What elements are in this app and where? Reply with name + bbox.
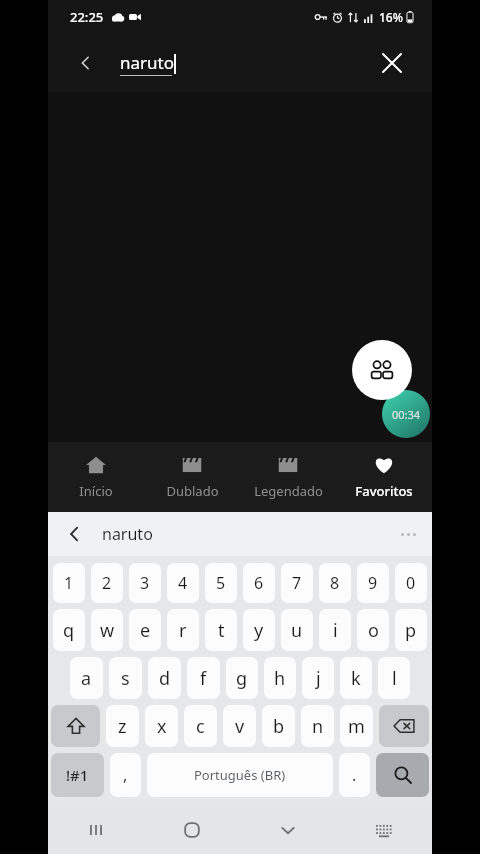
button[interactable]: 7 bbox=[281, 563, 313, 603]
button[interactable]: Change keyboard bbox=[336, 806, 432, 854]
button[interactable]: naruto bbox=[102, 512, 384, 556]
button[interactable]: Início bbox=[48, 442, 144, 512]
button[interactable]: x bbox=[145, 705, 178, 747]
button[interactable]: h bbox=[264, 657, 296, 699]
button[interactable]: r bbox=[167, 609, 199, 651]
button[interactable]: Recents bbox=[48, 806, 144, 854]
button[interactable]: Watch party bbox=[352, 340, 412, 400]
staticText: o bbox=[368, 618, 379, 643]
button[interactable]: 0 bbox=[395, 563, 427, 603]
button[interactable]: j bbox=[302, 657, 334, 699]
staticText: u bbox=[291, 618, 303, 643]
button[interactable]: q bbox=[53, 609, 85, 651]
button[interactable]: w bbox=[91, 609, 123, 651]
staticText: y bbox=[254, 618, 264, 643]
button[interactable]: y bbox=[243, 609, 275, 651]
staticText: Favoritos bbox=[355, 482, 413, 500]
staticText: h bbox=[274, 666, 286, 691]
staticText: w bbox=[100, 618, 115, 643]
button[interactable]: Hide keyboard bbox=[240, 806, 336, 854]
button[interactable]: !#1 bbox=[51, 753, 104, 797]
staticText: a bbox=[81, 666, 92, 691]
button[interactable]: m bbox=[340, 705, 373, 747]
button[interactable]: d bbox=[148, 657, 181, 699]
button[interactable]: Dublado bbox=[144, 442, 240, 512]
button[interactable]: . bbox=[339, 753, 370, 797]
button[interactable]: 8 bbox=[319, 563, 351, 603]
staticText: i bbox=[333, 618, 338, 643]
staticText: m bbox=[348, 714, 365, 739]
staticText: Português (BR) bbox=[194, 766, 286, 784]
staticText: 6 bbox=[254, 572, 264, 594]
staticText: 0 bbox=[406, 572, 416, 594]
staticText: q bbox=[63, 618, 75, 643]
button[interactable]: c bbox=[184, 705, 217, 747]
staticText: 7 bbox=[292, 572, 302, 594]
button[interactable]: Shift bbox=[51, 705, 100, 747]
button[interactable]: Backspace bbox=[379, 705, 429, 747]
staticText: , bbox=[123, 764, 128, 786]
button[interactable]: o bbox=[357, 609, 389, 651]
button[interactable]: a bbox=[70, 657, 103, 699]
button[interactable]: p bbox=[395, 609, 427, 651]
button[interactable]: Legendado bbox=[240, 442, 336, 512]
button[interactable]: Search bbox=[376, 753, 429, 797]
staticText: e bbox=[140, 618, 151, 643]
staticText: 1 bbox=[64, 572, 74, 594]
staticText: Legendado bbox=[254, 482, 323, 500]
button[interactable]: Favoritos bbox=[336, 442, 432, 512]
button[interactable]: g bbox=[226, 657, 258, 699]
button[interactable]: 5 bbox=[205, 563, 237, 603]
button[interactable]: 3 bbox=[129, 563, 161, 603]
button[interactable]: v bbox=[223, 705, 256, 747]
button[interactable]: Back bbox=[68, 45, 104, 81]
button[interactable]: f bbox=[187, 657, 220, 699]
button[interactable]: z bbox=[106, 705, 139, 747]
staticText: j bbox=[316, 666, 321, 691]
button[interactable]: b bbox=[262, 705, 295, 747]
button[interactable]: l bbox=[378, 657, 410, 699]
button[interactable]: u bbox=[281, 609, 313, 651]
button[interactable]: 2 bbox=[91, 563, 123, 603]
button[interactable]: 4 bbox=[167, 563, 199, 603]
button[interactable]: 9 bbox=[357, 563, 389, 603]
staticText: Início bbox=[79, 482, 113, 500]
staticText: 4 bbox=[178, 572, 188, 594]
button[interactable]: 1 bbox=[53, 563, 85, 603]
button[interactable]: 00:34 bbox=[382, 390, 430, 438]
staticText: d bbox=[159, 666, 171, 691]
button[interactable]: i bbox=[319, 609, 351, 651]
staticText: 5 bbox=[216, 572, 226, 594]
staticText: p bbox=[405, 618, 417, 643]
staticText: 16% bbox=[379, 9, 403, 25]
staticText: f bbox=[200, 666, 207, 691]
staticText: g bbox=[236, 666, 248, 691]
staticText: t bbox=[218, 618, 225, 643]
staticText: r bbox=[179, 618, 187, 643]
staticText: 2 bbox=[102, 572, 112, 594]
button[interactable]: s bbox=[109, 657, 142, 699]
staticText: 9 bbox=[368, 572, 378, 594]
button[interactable]: e bbox=[129, 609, 161, 651]
button[interactable]: Previous suggestion bbox=[48, 512, 102, 556]
staticText: c bbox=[196, 714, 205, 739]
button[interactable]: n bbox=[301, 705, 334, 747]
staticText: v bbox=[235, 714, 245, 739]
staticText: 3 bbox=[140, 572, 150, 594]
button[interactable]: , bbox=[110, 753, 141, 797]
staticText: k bbox=[351, 666, 361, 691]
button[interactable]: k bbox=[340, 657, 372, 699]
staticText: 8 bbox=[330, 572, 340, 594]
button[interactable]: Clear search bbox=[372, 43, 412, 83]
button[interactable]: More options bbox=[384, 512, 432, 556]
staticText: z bbox=[118, 714, 127, 739]
staticText: x bbox=[157, 714, 167, 739]
button[interactable]: Português (BR) bbox=[147, 753, 333, 797]
button[interactable]: t bbox=[205, 609, 237, 651]
staticText: Dublado bbox=[166, 482, 219, 500]
staticText: 22:25 bbox=[70, 8, 104, 26]
staticText: s bbox=[121, 666, 130, 691]
button[interactable]: Home bbox=[144, 806, 240, 854]
button[interactable]: 6 bbox=[243, 563, 275, 603]
staticText: n bbox=[312, 714, 324, 739]
